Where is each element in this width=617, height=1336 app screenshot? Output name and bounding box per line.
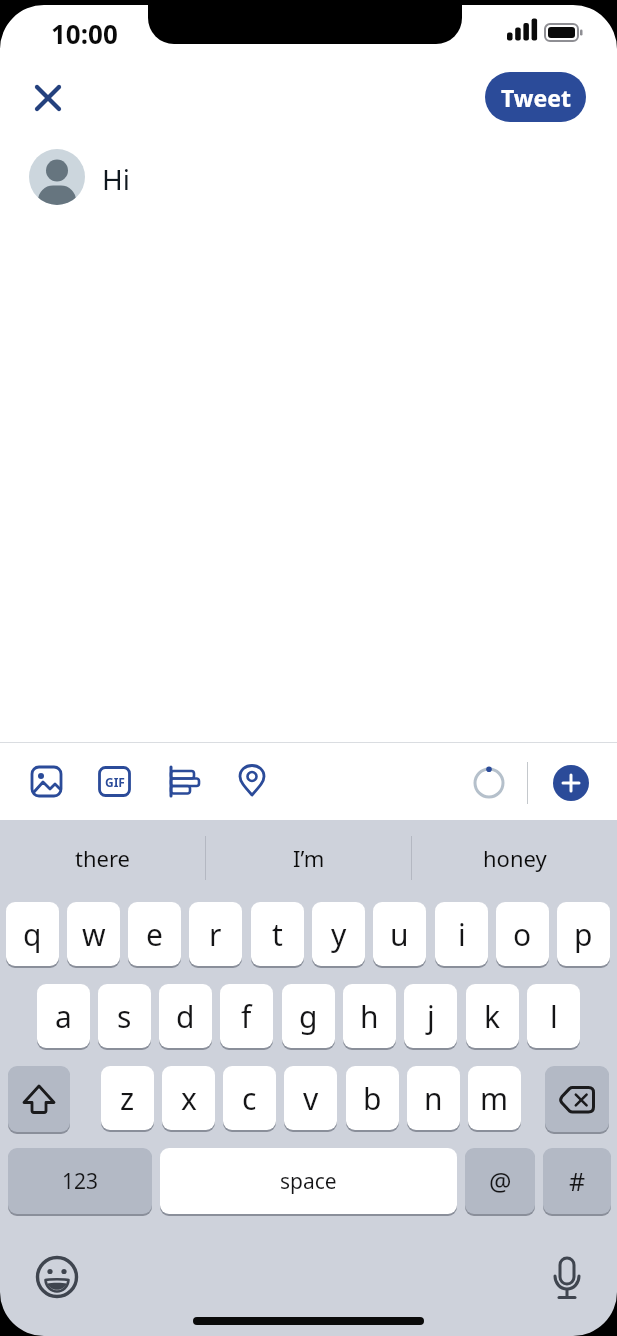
staticText: GIF <box>105 774 125 790</box>
staticText: f <box>241 996 252 1037</box>
button[interactable] <box>236 764 268 800</box>
staticText: Hi <box>102 160 130 194</box>
button[interactable]: k <box>466 984 519 1050</box>
button[interactable]: Tweet <box>485 72 586 122</box>
button[interactable]: t <box>251 902 304 968</box>
button[interactable]: p <box>557 902 610 968</box>
staticText: 123 <box>62 1167 99 1196</box>
button[interactable]: n <box>407 1066 460 1132</box>
staticText: t <box>272 914 283 955</box>
staticText: honey <box>483 843 547 873</box>
staticText: v <box>303 1078 319 1119</box>
button[interactable]: y <box>312 902 365 968</box>
button[interactable]: 123 <box>8 1148 152 1216</box>
button[interactable]: d <box>159 984 212 1050</box>
staticText: l <box>550 996 558 1037</box>
button[interactable]: c <box>223 1066 276 1132</box>
button[interactable]: I’m <box>206 832 411 884</box>
button[interactable]: @ <box>465 1148 535 1216</box>
staticText: j <box>427 996 435 1037</box>
staticText: x <box>181 1078 197 1119</box>
button[interactable]: e <box>128 902 181 968</box>
staticText: Tweet <box>501 82 571 113</box>
button[interactable]: there <box>0 832 205 884</box>
button[interactable]: h <box>343 984 396 1050</box>
staticText: g <box>299 996 318 1037</box>
staticText: s <box>117 996 132 1037</box>
button[interactable] <box>553 765 589 801</box>
staticText: u <box>390 914 409 955</box>
staticText: e <box>146 914 163 955</box>
button[interactable]: z <box>101 1066 154 1132</box>
button[interactable]: v <box>284 1066 337 1132</box>
staticText: c <box>242 1078 257 1119</box>
button[interactable] <box>8 1066 70 1134</box>
staticText: # <box>569 1164 586 1198</box>
staticText: b <box>363 1078 382 1119</box>
button[interactable]: x <box>162 1066 215 1132</box>
staticText: 10:00 <box>51 16 118 46</box>
staticText: o <box>513 914 532 955</box>
button[interactable]: b <box>346 1066 399 1132</box>
staticText: n <box>424 1078 443 1119</box>
staticText: d <box>176 996 195 1037</box>
staticText: z <box>120 1078 135 1119</box>
staticText: i <box>458 914 466 955</box>
staticText: k <box>484 996 501 1037</box>
staticText: m <box>480 1078 509 1119</box>
staticText: p <box>574 914 593 955</box>
button[interactable]: g <box>282 984 335 1050</box>
button[interactable]: o <box>496 902 549 968</box>
button[interactable]: space <box>160 1148 457 1216</box>
button[interactable]: w <box>67 902 120 968</box>
button[interactable]: i <box>435 902 488 968</box>
button[interactable] <box>30 765 63 798</box>
button[interactable]: f <box>220 984 273 1050</box>
staticText: h <box>360 996 379 1037</box>
button[interactable]: a <box>37 984 90 1050</box>
button[interactable] <box>545 1066 609 1134</box>
button[interactable]: m <box>468 1066 521 1132</box>
staticText: I’m <box>293 843 325 873</box>
staticText: a <box>55 996 72 1037</box>
staticText: y <box>331 914 347 955</box>
button[interactable] <box>168 765 201 798</box>
staticText: q <box>23 914 42 955</box>
staticText: there <box>75 843 131 873</box>
button[interactable]: honey <box>412 832 617 884</box>
button[interactable]: q <box>6 902 59 968</box>
button[interactable]: r <box>189 902 242 968</box>
staticText: w <box>82 914 106 955</box>
button[interactable]: s <box>98 984 151 1050</box>
staticText: space <box>280 1167 337 1196</box>
button[interactable]: j <box>404 984 457 1050</box>
staticText: @ <box>489 1164 512 1198</box>
button[interactable] <box>34 1254 80 1300</box>
button[interactable]: u <box>373 902 426 968</box>
button[interactable] <box>26 76 70 120</box>
button[interactable]: l <box>527 984 580 1050</box>
button[interactable] <box>546 1252 588 1306</box>
button[interactable]: GIF <box>98 766 131 797</box>
button[interactable]: # <box>543 1148 611 1216</box>
staticText: r <box>209 914 222 955</box>
